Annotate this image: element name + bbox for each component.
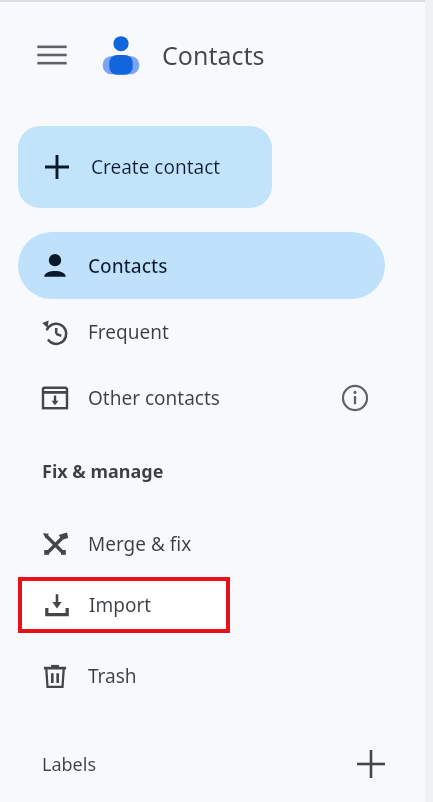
staticText: Create contact <box>91 154 221 180</box>
staticText: Labels <box>42 752 97 777</box>
staticText: Trash <box>88 663 137 689</box>
staticText: Frequent <box>88 319 169 345</box>
staticText: Fix & manage <box>42 459 164 484</box>
button[interactable]: Open navigation menu <box>30 33 74 77</box>
button[interactable]: Import <box>22 581 226 629</box>
button[interactable]: Create label <box>347 740 395 788</box>
button[interactable]: Frequent <box>18 299 385 365</box>
button[interactable]: Contacts <box>18 232 385 299</box>
button[interactable]: Info about other contacts <box>333 376 377 420</box>
button[interactable]: Other contacts <box>18 365 385 431</box>
button[interactable]: Create contact <box>18 126 272 208</box>
staticText: Merge & fix <box>88 531 192 557</box>
button[interactable]: Merge & fix <box>18 511 385 577</box>
staticText: Import <box>89 592 152 618</box>
staticText: Contacts <box>88 253 168 279</box>
staticText: Other contacts <box>88 385 220 411</box>
button[interactable]: Trash <box>18 643 385 709</box>
staticText: Contacts <box>162 38 265 72</box>
